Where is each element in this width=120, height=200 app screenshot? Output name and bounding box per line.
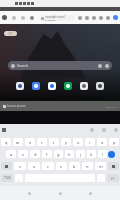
staticText: f bbox=[46, 152, 48, 157]
button[interactable]: e bbox=[25, 138, 35, 146]
button[interactable]: p bbox=[109, 138, 119, 146]
button[interactable]: d bbox=[30, 150, 40, 158]
staticText: e bbox=[29, 140, 32, 145]
button[interactable]: example.com/screens bbox=[40, 15, 75, 21]
staticText: m bbox=[99, 164, 103, 169]
staticText: , bbox=[18, 176, 20, 181]
button[interactable]: Extensions bbox=[78, 16, 82, 20]
button[interactable]: More bbox=[106, 16, 110, 20]
staticText: v bbox=[60, 164, 63, 169]
button[interactable]: b bbox=[69, 162, 80, 170]
staticText: r bbox=[41, 140, 43, 145]
button[interactable] bbox=[32, 82, 40, 90]
button[interactable]: Nav bbox=[89, 192, 92, 195]
staticText: b bbox=[73, 164, 76, 169]
button[interactable]: f bbox=[42, 150, 52, 158]
button[interactable] bbox=[64, 82, 72, 90]
staticText: u bbox=[77, 140, 80, 145]
button[interactable]: History bbox=[99, 16, 103, 20]
button[interactable]: t bbox=[49, 138, 59, 146]
button[interactable]: j bbox=[76, 150, 85, 158]
button[interactable]: y bbox=[61, 138, 71, 146]
button[interactable]: . bbox=[97, 174, 105, 182]
staticText: p bbox=[113, 140, 116, 145]
button[interactable]: m bbox=[95, 162, 106, 170]
staticText: t bbox=[53, 140, 55, 145]
button[interactable]: Forward bbox=[12, 16, 16, 20]
button[interactable]: Downloads bbox=[92, 16, 96, 20]
button[interactable]: Settings bbox=[102, 128, 106, 132]
button[interactable]: Voice input bbox=[114, 128, 118, 132]
button[interactable]: w bbox=[13, 138, 23, 146]
button[interactable]: Nav bbox=[59, 192, 62, 195]
staticText: k bbox=[90, 152, 93, 157]
button[interactable]: Home bbox=[30, 16, 34, 20]
staticText: example.com/screens bbox=[45, 15, 75, 21]
button[interactable]: Clipboard bbox=[90, 128, 94, 132]
staticText: . bbox=[100, 176, 102, 181]
staticText: ?123 bbox=[4, 176, 11, 180]
button[interactable]: Bookmark bbox=[85, 16, 89, 20]
button[interactable]: c bbox=[42, 162, 54, 170]
button[interactable]: n bbox=[82, 162, 93, 170]
staticText: q bbox=[5, 140, 8, 145]
button[interactable]: Back bbox=[2, 15, 7, 20]
button[interactable]: k bbox=[87, 150, 96, 158]
button[interactable]: o bbox=[97, 138, 107, 146]
button[interactable] bbox=[80, 82, 88, 90]
staticText: y bbox=[65, 140, 68, 145]
button[interactable]: g bbox=[54, 150, 63, 158]
button[interactable]: v bbox=[56, 162, 67, 170]
button[interactable]: q bbox=[1, 138, 11, 146]
button[interactable]: a bbox=[6, 150, 16, 158]
staticText: c bbox=[47, 164, 49, 169]
button[interactable]: l bbox=[98, 150, 107, 158]
staticText: z bbox=[19, 164, 21, 169]
staticText: Lorem ipsum bbox=[7, 104, 26, 108]
button[interactable]: z bbox=[14, 162, 26, 170]
staticText: x bbox=[33, 164, 36, 169]
button[interactable]: Search bbox=[8, 61, 112, 70]
button[interactable]: i bbox=[85, 138, 95, 146]
staticText: see more bbox=[106, 105, 117, 108]
button[interactable]: 12° bbox=[4, 31, 17, 36]
button[interactable]: Nav bbox=[28, 192, 31, 195]
button[interactable]: s bbox=[18, 150, 28, 158]
staticText: d bbox=[34, 152, 37, 157]
staticText: l bbox=[102, 152, 104, 157]
button[interactable]: Shift bbox=[1, 162, 12, 170]
staticText: g bbox=[57, 152, 60, 157]
staticText: h bbox=[68, 152, 71, 157]
button[interactable]: ↵ bbox=[107, 174, 119, 182]
button[interactable]: h bbox=[65, 150, 74, 158]
staticText: i bbox=[89, 140, 91, 145]
staticText: ↵ bbox=[111, 176, 115, 181]
button[interactable] bbox=[96, 82, 104, 90]
button[interactable] bbox=[16, 82, 24, 90]
button[interactable]: u bbox=[73, 138, 83, 146]
button[interactable]: Reload bbox=[21, 16, 25, 20]
staticText: n bbox=[86, 164, 89, 169]
staticText: w bbox=[16, 140, 20, 145]
staticText: o bbox=[101, 140, 104, 145]
button[interactable]: Backspace bbox=[108, 162, 119, 170]
button[interactable]: r bbox=[37, 138, 47, 146]
button[interactable]: ?123 bbox=[1, 174, 13, 182]
staticText: a bbox=[10, 152, 13, 157]
staticText: Search bbox=[17, 63, 29, 68]
staticText: s bbox=[22, 152, 24, 157]
button[interactable]: Profile bbox=[113, 15, 118, 20]
button[interactable]: x bbox=[28, 162, 40, 170]
staticText: 12° bbox=[8, 32, 13, 36]
button[interactable]: , bbox=[15, 174, 23, 182]
button[interactable] bbox=[48, 82, 56, 90]
button[interactable]: Enter bbox=[108, 151, 115, 158]
staticText: j bbox=[80, 152, 82, 157]
